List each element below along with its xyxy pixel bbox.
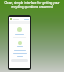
button[interactable]	[9, 17, 30, 21]
staticText: Clean, simple interface for getting your…	[2, 1, 62, 9]
